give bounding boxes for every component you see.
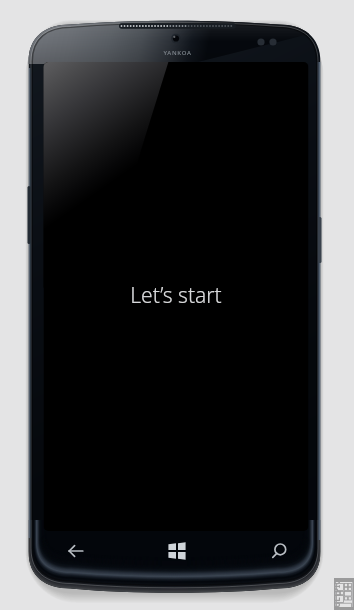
staticText: YANKOA bbox=[163, 49, 192, 57]
staticText: Let’s start bbox=[130, 281, 222, 309]
button[interactable]: Let’s start bbox=[96, 281, 256, 309]
button[interactable]: Back bbox=[52, 535, 100, 567]
staticText: CULTPIC bbox=[331, 579, 341, 610]
button[interactable]: Search bbox=[255, 535, 303, 567]
button[interactable]: Start bbox=[153, 535, 201, 567]
